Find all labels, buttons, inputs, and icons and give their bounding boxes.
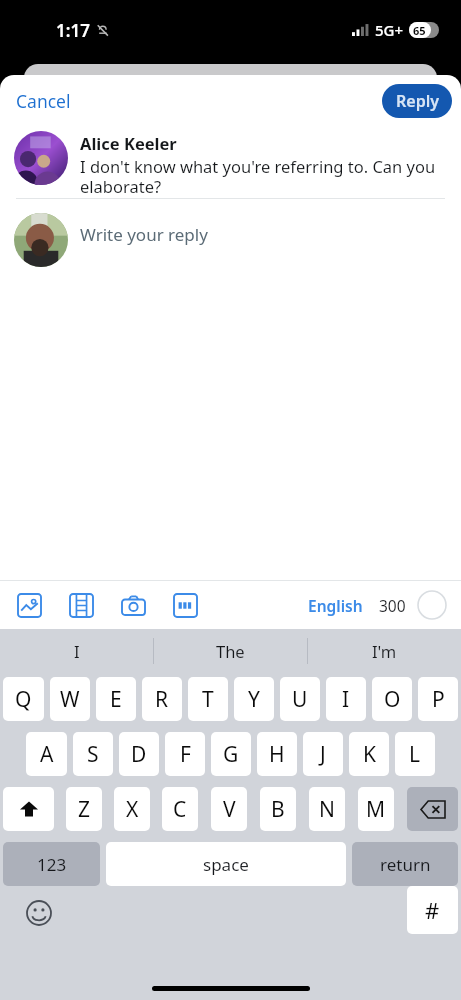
staticText: N xyxy=(319,795,335,824)
button[interactable]: Shift xyxy=(3,787,54,831)
staticText: H xyxy=(269,740,285,769)
button[interactable]: # xyxy=(407,886,458,934)
button[interactable]: 123 xyxy=(3,842,100,886)
button[interactable]: Y xyxy=(234,677,274,721)
button[interactable]: I'm xyxy=(308,629,461,673)
button[interactable]: K xyxy=(349,732,389,776)
button[interactable]: X xyxy=(114,787,150,831)
staticText: O xyxy=(384,685,401,714)
button[interactable]: B xyxy=(260,787,296,831)
button[interactable]: Emoji xyxy=(22,896,56,930)
staticText: English xyxy=(308,595,363,616)
staticText: A xyxy=(40,740,54,769)
button[interactable]: N xyxy=(309,787,345,831)
button[interactable]: U xyxy=(280,677,320,721)
button[interactable]: W xyxy=(50,677,90,721)
button[interactable]: V xyxy=(211,787,247,831)
staticText: B xyxy=(271,795,285,824)
staticText: F xyxy=(180,740,191,769)
other: Character count xyxy=(417,590,447,620)
staticText: W xyxy=(60,685,80,714)
staticText: L xyxy=(409,740,421,769)
staticText: G xyxy=(223,740,239,769)
button[interactable]: Cancel xyxy=(0,81,87,121)
button[interactable]: Add video xyxy=(66,590,96,620)
staticText: The xyxy=(216,640,245,662)
staticText: M xyxy=(366,795,386,824)
button[interactable]: Write your reply xyxy=(14,213,461,267)
staticText: Cancel xyxy=(16,89,71,113)
staticText: 65 xyxy=(413,23,426,38)
staticText: Q xyxy=(15,685,32,714)
button[interactable]: Z xyxy=(66,787,102,831)
button[interactable]: Add photo xyxy=(14,590,44,620)
staticText: T xyxy=(202,685,214,714)
button[interactable]: D xyxy=(119,732,159,776)
staticText: J xyxy=(320,740,326,769)
staticText: P xyxy=(432,685,445,714)
staticText: Reply xyxy=(396,90,439,112)
staticText: V xyxy=(223,795,236,824)
button[interactable]: M xyxy=(358,787,394,831)
button[interactable]: Camera xyxy=(118,590,148,620)
staticText: X xyxy=(126,795,139,824)
staticText: E xyxy=(110,685,122,714)
button[interactable]: H xyxy=(257,732,297,776)
button[interactable]: E xyxy=(96,677,136,721)
staticText: I don't know what you're referring to. C… xyxy=(80,155,436,198)
button[interactable]: S xyxy=(73,732,113,776)
button[interactable]: A xyxy=(26,732,67,776)
button[interactable]: T xyxy=(188,677,228,721)
staticText: 123 xyxy=(37,853,67,876)
staticText: 300 xyxy=(379,595,406,616)
staticText: 1:17 xyxy=(56,19,90,42)
staticText: # xyxy=(425,895,440,925)
staticText: U xyxy=(292,685,308,714)
staticText: 5G+ xyxy=(375,20,404,40)
button[interactable]: R xyxy=(142,677,182,721)
staticText: Y xyxy=(248,685,260,714)
button[interactable]: I xyxy=(0,629,153,673)
button[interactable]: P xyxy=(418,677,458,721)
staticText: Write your reply xyxy=(80,223,208,246)
button[interactable]: Q xyxy=(3,677,44,721)
button[interactable]: Add GIF xyxy=(170,590,200,620)
staticText: S xyxy=(87,740,99,769)
button[interactable]: I xyxy=(326,677,366,721)
staticText: I xyxy=(74,640,80,662)
button[interactable]: space xyxy=(106,842,346,886)
button[interactable]: G xyxy=(211,732,251,776)
button[interactable]: Backspace xyxy=(407,787,458,831)
button[interactable]: Reply xyxy=(382,84,452,118)
staticText: I'm xyxy=(372,640,397,662)
staticText: Z xyxy=(78,795,91,824)
button[interactable]: F xyxy=(165,732,205,776)
button[interactable]: English xyxy=(304,589,367,622)
staticText: return xyxy=(380,853,431,876)
button[interactable]: C xyxy=(162,787,198,831)
staticText: Alice Keeler xyxy=(80,132,177,154)
button[interactable]: The xyxy=(154,629,307,673)
button[interactable]: L xyxy=(395,732,435,776)
staticText: I xyxy=(342,685,350,714)
staticText: R xyxy=(155,685,169,714)
button[interactable]: J xyxy=(303,732,343,776)
staticText: C xyxy=(173,795,187,824)
button[interactable]: return xyxy=(352,842,458,886)
staticText: D xyxy=(131,740,147,769)
staticText: K xyxy=(363,740,376,769)
button[interactable]: O xyxy=(372,677,412,721)
staticText: space xyxy=(203,853,249,876)
